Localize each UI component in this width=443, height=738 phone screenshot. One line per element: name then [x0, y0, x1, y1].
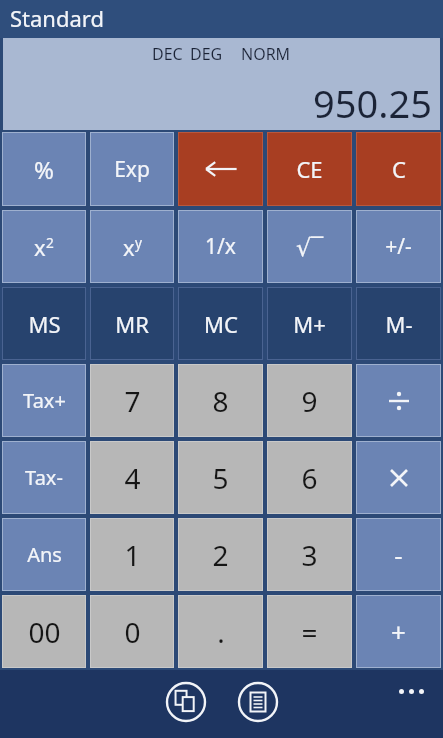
button[interactable]: MS: [2, 287, 86, 360]
button[interactable]: [178, 132, 263, 206]
staticText: %: [34, 153, 54, 186]
button[interactable]: 0: [90, 595, 174, 668]
staticText: 7: [124, 382, 141, 420]
staticText: 3: [301, 536, 318, 574]
button[interactable]: History: [234, 678, 282, 726]
button[interactable]: 4: [90, 441, 174, 514]
button[interactable]: 00: [2, 595, 86, 668]
staticText: 9: [301, 382, 318, 420]
staticText: M+: [293, 309, 326, 339]
staticText: =: [301, 613, 318, 651]
staticText: MC: [204, 309, 238, 339]
button[interactable]: Copy: [162, 678, 210, 726]
button[interactable]: .: [178, 595, 263, 668]
staticText: √‾: [296, 230, 324, 263]
button[interactable]: M-: [356, 287, 441, 360]
button[interactable]: 5: [178, 441, 263, 514]
button[interactable]: [356, 441, 441, 514]
button[interactable]: MR: [90, 287, 174, 360]
button[interactable]: M+: [267, 287, 352, 360]
staticText: x: [123, 232, 135, 262]
button[interactable]: x: [90, 210, 174, 283]
button[interactable]: Tax-: [2, 441, 86, 514]
button[interactable]: Tax+: [2, 364, 86, 437]
button[interactable]: %: [2, 132, 86, 206]
staticText: x: [34, 232, 46, 262]
staticText: 00: [28, 613, 61, 651]
staticText: NORM: [241, 43, 291, 65]
staticText: 4: [124, 459, 141, 497]
staticText: 2: [46, 233, 54, 252]
staticText: DEG: [190, 43, 223, 65]
button[interactable]: =: [267, 595, 352, 668]
staticText: .: [217, 613, 225, 651]
button[interactable]: 8: [178, 364, 263, 437]
button[interactable]: More options: [391, 680, 431, 702]
staticText: -: [394, 537, 403, 572]
button[interactable]: CE: [267, 132, 352, 206]
staticText: y: [135, 233, 142, 252]
staticText: 2: [212, 536, 229, 574]
staticText: MS: [28, 309, 61, 339]
staticText: +: [391, 614, 406, 649]
button[interactable]: Ans: [2, 518, 86, 591]
staticText: M-: [385, 309, 413, 339]
staticText: +/-: [385, 232, 412, 261]
staticText: 8: [212, 382, 229, 420]
staticText: 1/x: [205, 232, 236, 261]
button[interactable]: x: [2, 210, 86, 283]
button[interactable]: 3: [267, 518, 352, 591]
button[interactable]: √‾: [267, 210, 352, 283]
staticText: DEC: [152, 43, 183, 65]
button[interactable]: -: [356, 518, 441, 591]
button[interactable]: +/-: [356, 210, 441, 283]
button[interactable]: C: [356, 132, 441, 206]
staticText: 5: [212, 459, 229, 497]
button[interactable]: +: [356, 595, 441, 668]
staticText: 6: [301, 459, 318, 497]
button[interactable]: 7: [90, 364, 174, 437]
staticText: Tax-: [25, 464, 63, 491]
staticText: 950.25: [313, 77, 432, 129]
button[interactable]: [356, 364, 441, 437]
button[interactable]: Exp: [90, 132, 174, 206]
button[interactable]: 1/x: [178, 210, 263, 283]
button[interactable]: 2: [178, 518, 263, 591]
button[interactable]: 9: [267, 364, 352, 437]
staticText: CE: [296, 154, 323, 184]
button[interactable]: 6: [267, 441, 352, 514]
button[interactable]: MC: [178, 287, 263, 360]
staticText: Tax+: [23, 387, 66, 414]
staticText: Standard: [10, 3, 105, 33]
staticText: C: [392, 154, 406, 184]
staticText: 0: [124, 613, 141, 651]
staticText: 1: [124, 536, 141, 574]
staticText: Ans: [27, 541, 62, 568]
staticText: Exp: [114, 155, 150, 184]
button[interactable]: 1: [90, 518, 174, 591]
staticText: MR: [115, 309, 149, 339]
